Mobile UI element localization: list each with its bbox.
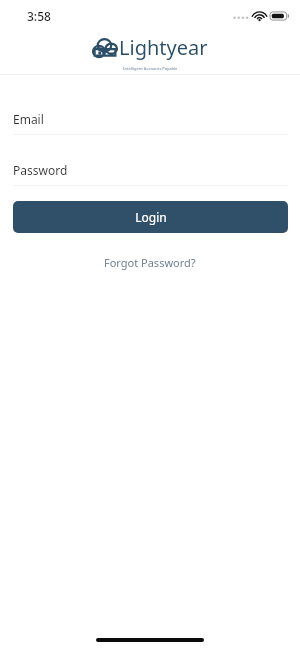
button[interactable]: Password <box>0 154 300 186</box>
button[interactable]: Login <box>13 201 288 233</box>
button[interactable]: Email <box>0 103 300 135</box>
staticText: Forgot Password? <box>104 255 196 270</box>
staticText: 3:58 <box>27 8 51 24</box>
staticText: Intelligent Accounts Payable <box>123 66 178 71</box>
staticText: Email <box>13 111 44 127</box>
button[interactable]: Forgot Password? <box>98 253 202 272</box>
staticText: Login <box>135 209 167 225</box>
staticText: Lightyear <box>119 34 208 61</box>
staticText: Password <box>13 162 68 178</box>
